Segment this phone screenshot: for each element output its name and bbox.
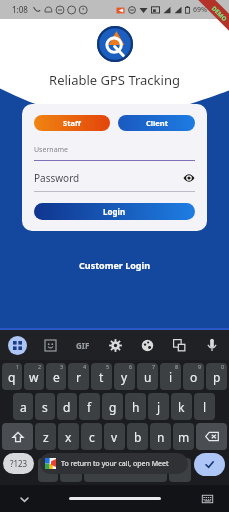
button[interactable]: Switch keyboard bbox=[197, 489, 217, 509]
staticText: h bbox=[132, 399, 140, 415]
button[interactable]: Period bbox=[169, 458, 191, 482]
staticText: 69% bbox=[193, 5, 207, 15]
staticText: z bbox=[43, 429, 49, 445]
button[interactable]: e bbox=[46, 363, 66, 390]
button[interactable]: Backspace bbox=[196, 423, 227, 450]
button[interactable]: y bbox=[114, 363, 135, 390]
button[interactable]: a bbox=[13, 393, 33, 420]
staticText: 8 bbox=[175, 363, 179, 370]
button[interactable]: Client bbox=[118, 115, 195, 131]
button[interactable]: b bbox=[127, 423, 148, 450]
staticText: p bbox=[213, 369, 221, 385]
button[interactable]: Themes bbox=[131, 330, 163, 360]
staticText: w bbox=[29, 369, 39, 385]
button[interactable]: q bbox=[2, 363, 22, 390]
button[interactable]: i bbox=[160, 363, 181, 390]
staticText: 6 bbox=[129, 363, 133, 370]
button[interactable]: Shift bbox=[2, 423, 33, 450]
button[interactable]: t bbox=[91, 363, 112, 390]
button[interactable]: s bbox=[35, 393, 55, 420]
button[interactable]: ?123 bbox=[3, 453, 34, 474]
button[interactable]: Enter bbox=[194, 453, 225, 476]
button[interactable]: Username bbox=[34, 144, 195, 155]
button[interactable]: Translate bbox=[163, 330, 195, 360]
staticText: 1 bbox=[16, 363, 20, 370]
staticText: e bbox=[53, 369, 60, 385]
staticText: Password bbox=[34, 171, 183, 185]
staticText: f bbox=[87, 399, 92, 415]
button[interactable]: m bbox=[173, 423, 194, 450]
staticText: GIF bbox=[76, 340, 90, 351]
button[interactable]: Space bbox=[84, 458, 167, 482]
button[interactable]: Comma bbox=[38, 458, 58, 482]
staticText: d bbox=[63, 399, 71, 415]
staticText: u bbox=[144, 369, 152, 385]
button[interactable]: l bbox=[194, 393, 215, 420]
staticText: b bbox=[134, 429, 142, 445]
button[interactable]: r bbox=[68, 363, 89, 390]
button[interactable]: GIF bbox=[67, 330, 99, 360]
staticText: m bbox=[178, 429, 190, 445]
button[interactable]: Hide keyboard bbox=[14, 489, 34, 509]
staticText: 5 bbox=[106, 363, 110, 370]
button[interactable]: Stickers bbox=[34, 330, 67, 360]
staticText: s bbox=[42, 399, 48, 415]
button[interactable]: Customer Login bbox=[69, 255, 161, 275]
button[interactable]: Emoji bbox=[60, 458, 82, 482]
button[interactable]: d bbox=[57, 393, 77, 420]
button[interactable]: p bbox=[206, 363, 227, 390]
staticText: 9 bbox=[198, 363, 202, 370]
button[interactable]: k bbox=[171, 393, 192, 420]
staticText: k bbox=[178, 399, 185, 415]
button[interactable]: n bbox=[150, 423, 171, 450]
staticText: 3 bbox=[60, 363, 64, 370]
button[interactable]: j bbox=[148, 393, 169, 420]
staticText: i bbox=[169, 369, 173, 385]
staticText: Client bbox=[146, 118, 168, 128]
other: Show password bbox=[183, 172, 195, 184]
button[interactable]: Password bbox=[34, 170, 195, 185]
button[interactable]: x bbox=[58, 423, 79, 450]
button[interactable]: To return to your call, open Meet bbox=[40, 453, 188, 474]
staticText: 0 bbox=[221, 363, 225, 370]
button[interactable]: f bbox=[79, 393, 100, 420]
staticText: j bbox=[157, 399, 161, 415]
staticText: t bbox=[99, 369, 104, 385]
staticText: 4 bbox=[83, 363, 87, 370]
staticText: y bbox=[121, 369, 128, 385]
staticText: v bbox=[111, 429, 118, 445]
button[interactable]: Staff bbox=[34, 115, 110, 131]
staticText: g bbox=[109, 399, 117, 415]
button[interactable]: w bbox=[24, 363, 44, 390]
staticText: To return to your call, open Meet bbox=[61, 459, 169, 469]
staticText: Username bbox=[34, 145, 195, 155]
staticText: c bbox=[89, 429, 95, 445]
staticText: x bbox=[65, 429, 72, 445]
staticText: ?123 bbox=[10, 458, 28, 469]
staticText: a bbox=[20, 399, 27, 415]
button[interactable]: g bbox=[102, 393, 123, 420]
button[interactable]: Login bbox=[34, 203, 195, 220]
staticText: Customer Login bbox=[79, 259, 151, 271]
staticText: q bbox=[8, 369, 16, 385]
staticText: Staff bbox=[63, 118, 81, 128]
button[interactable]: o bbox=[183, 363, 204, 390]
button[interactable]: c bbox=[81, 423, 102, 450]
staticText: DEMO bbox=[210, 4, 229, 24]
staticText: 1:08 bbox=[12, 4, 28, 15]
button[interactable]: Voice input bbox=[195, 330, 229, 360]
staticText: l bbox=[203, 399, 207, 415]
button[interactable]: v bbox=[104, 423, 125, 450]
button[interactable]: u bbox=[137, 363, 158, 390]
button[interactable]: h bbox=[125, 393, 146, 420]
staticText: 2 bbox=[38, 363, 42, 370]
button[interactable]: Keyboard modes bbox=[0, 330, 34, 360]
button[interactable]: z bbox=[35, 423, 56, 450]
staticText: o bbox=[190, 369, 198, 385]
staticText: n bbox=[157, 429, 165, 445]
staticText: r bbox=[76, 369, 81, 385]
staticText: Reliable GPS Tracking bbox=[49, 71, 180, 89]
button[interactable]: Settings bbox=[99, 330, 131, 360]
staticText: 7 bbox=[152, 363, 156, 370]
staticText: Login bbox=[103, 206, 126, 217]
